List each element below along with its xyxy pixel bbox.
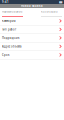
button[interactable]: Срок [0, 51, 64, 59]
staticText: Количество [41, 10, 58, 13]
button[interactable]: Адрес объекта [0, 42, 64, 51]
button[interactable]: Категория [0, 17, 64, 25]
staticText: Новая заявка [21, 4, 43, 8]
staticText: Срок [2, 53, 9, 57]
button[interactable]: Тип работ [0, 25, 64, 34]
staticText: ▮▮▮ [59, 0, 62, 3]
staticText: Тип работ [2, 28, 16, 31]
staticText: Наименование [2, 10, 22, 13]
staticText: 9:41 [2, 0, 9, 4]
staticText: Адрес объекта [2, 45, 21, 48]
staticText: Подрядчик [2, 36, 19, 40]
button[interactable]: Подрядчик [0, 34, 64, 42]
staticText: Категория [2, 19, 16, 23]
